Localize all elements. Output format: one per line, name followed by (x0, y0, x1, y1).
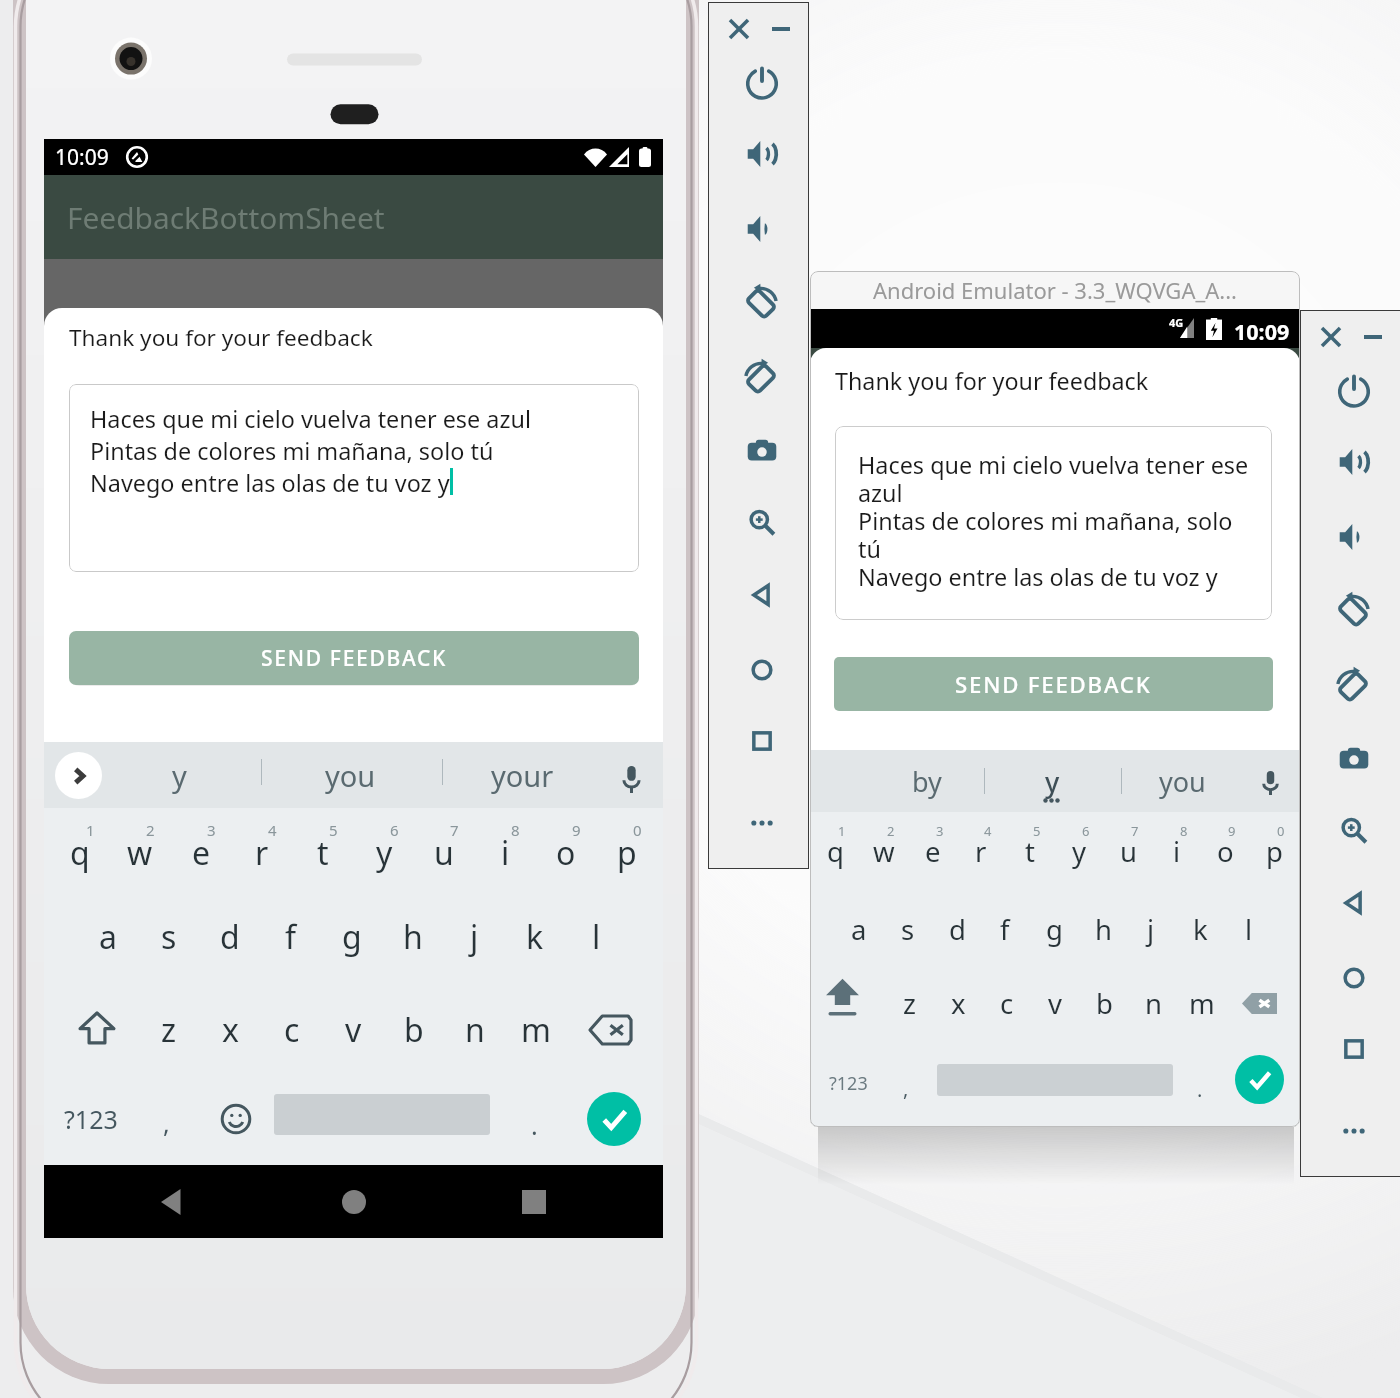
staticText: . (1197, 1076, 1203, 1103)
button[interactable]: Back (741, 574, 783, 616)
button[interactable]: Power (1333, 369, 1375, 411)
staticText: 10:09 (55, 143, 109, 172)
button[interactable]: Screenshot (741, 430, 783, 472)
staticText: e (192, 831, 211, 875)
staticText: o (1217, 833, 1234, 870)
button[interactable]: Emoji (214, 1097, 258, 1141)
button[interactable]: Shift (72, 1003, 121, 1052)
button[interactable]: Close (1318, 324, 1344, 350)
button[interactable]: Shift (820, 976, 864, 1020)
button[interactable]: Volume up (1333, 441, 1375, 483)
staticText: i (1173, 833, 1181, 870)
staticText: , (903, 1075, 909, 1102)
staticText: 10:09 (1234, 317, 1290, 346)
staticText: . (531, 1108, 538, 1142)
button[interactable]: Overview (1333, 1028, 1375, 1070)
button[interactable]: by (887, 752, 967, 810)
button[interactable]: Rotate right (1333, 663, 1375, 705)
button[interactable]: Home (342, 1190, 366, 1214)
button[interactable]: SEND FEEDBACK (69, 631, 639, 685)
button[interactable]: Rotate left (1333, 588, 1375, 630)
staticText: j (1147, 911, 1155, 948)
button[interactable]: More (741, 802, 783, 844)
staticText: k (1193, 911, 1208, 948)
staticText: g (1046, 911, 1063, 948)
button[interactable]: Backspace (1238, 982, 1280, 1024)
button[interactable]: y (135, 746, 224, 804)
staticText: s (901, 911, 915, 948)
staticText: , (163, 1106, 170, 1140)
button[interactable]: Voice input (610, 758, 652, 800)
staticText: f (285, 915, 297, 959)
button[interactable]: y (1012, 752, 1092, 810)
button[interactable]: SEND FEEDBACK (834, 657, 1273, 711)
staticText: b (404, 1008, 424, 1052)
button[interactable]: Volume up (741, 133, 783, 175)
staticText: b (1096, 985, 1113, 1022)
button[interactable]: Power (741, 61, 783, 103)
staticText: c (1000, 985, 1014, 1022)
staticText: m (1189, 985, 1215, 1022)
button[interactable]: Overview (741, 720, 783, 762)
staticText: Haces que mi cielo vuelva tener ese azul (90, 403, 531, 435)
button[interactable]: Zoom (1333, 810, 1375, 852)
button[interactable]: your (478, 746, 567, 804)
staticText: o (556, 831, 576, 875)
staticText: 1 (86, 820, 95, 840)
button[interactable]: Expand suggestions (55, 752, 102, 799)
staticText: 8 (511, 820, 520, 840)
button[interactable]: Volume down (741, 208, 783, 250)
staticText: e (925, 833, 941, 870)
staticText: 5 (1033, 822, 1041, 840)
button[interactable]: More (1333, 1110, 1375, 1152)
staticText: Navego entre las olas de tu voz y (90, 467, 450, 499)
staticText: r (975, 833, 987, 870)
staticText: x (222, 1008, 239, 1052)
staticText: Thank you for your feedback (835, 365, 1149, 397)
staticText: q (827, 833, 844, 870)
staticText: SEND FEEDBACK (955, 669, 1152, 699)
staticText: i (501, 831, 510, 875)
button[interactable]: Back (1333, 882, 1375, 924)
button[interactable]: Enter (1235, 1055, 1284, 1104)
staticText: a (851, 911, 867, 948)
staticText: by (912, 763, 942, 800)
staticText: d (949, 911, 966, 948)
staticText: l (592, 915, 601, 959)
staticText: 6 (390, 820, 399, 840)
button[interactable]: Rotate left (741, 280, 783, 322)
staticText: Haces que mi cielo vuelva tener ese azul… (858, 449, 1252, 593)
staticText: FeedbackBottomSheet (67, 197, 385, 238)
button[interactable]: Home (741, 649, 783, 691)
staticText: m (521, 1008, 551, 1052)
button[interactable]: Backspace (586, 1006, 634, 1054)
button[interactable]: you (306, 746, 395, 804)
staticText: you (1159, 763, 1206, 800)
staticText: 2 (887, 822, 895, 840)
staticText: q (70, 831, 90, 875)
button[interactable]: Close (726, 16, 752, 42)
button[interactable]: Minimize (768, 16, 794, 42)
staticText: ?123 (829, 1071, 868, 1096)
button[interactable]: Minimize (1360, 324, 1386, 350)
staticText: v (1048, 985, 1062, 1022)
staticText: j (470, 915, 479, 959)
button[interactable]: Enter (587, 1092, 641, 1146)
button[interactable]: Zoom (741, 502, 783, 544)
button[interactable]: Back (161, 1189, 187, 1215)
button[interactable]: Rotate right (741, 355, 783, 397)
button[interactable]: Home (1333, 957, 1375, 999)
staticText: p (617, 831, 637, 875)
button[interactable]: Voice input (1252, 764, 1289, 801)
button[interactable]: Volume down (1333, 516, 1375, 558)
staticText: 2 (146, 820, 155, 840)
staticText: 9 (1228, 822, 1236, 840)
staticText: 4 (268, 820, 277, 840)
staticText: x (951, 985, 966, 1022)
button[interactable]: you (1142, 752, 1222, 810)
button[interactable]: Screenshot (1333, 738, 1375, 780)
staticText: y (172, 756, 187, 795)
